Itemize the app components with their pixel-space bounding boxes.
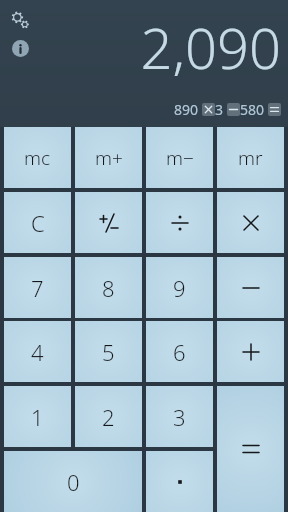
staticText: 6 xyxy=(173,337,186,367)
button[interactable]: 6 xyxy=(146,321,213,382)
button[interactable]: Info xyxy=(6,34,34,62)
button[interactable]: Settings xyxy=(6,6,34,34)
button[interactable]: 8 xyxy=(75,257,142,318)
button[interactable]: 0 xyxy=(4,451,142,512)
button[interactable]: 3 xyxy=(146,386,213,447)
staticText: 890 xyxy=(174,100,199,119)
button[interactable]: Equals xyxy=(217,386,284,512)
staticText: 580 xyxy=(240,100,265,119)
button[interactable]: mr xyxy=(217,127,284,188)
button[interactable]: m+ xyxy=(75,127,142,188)
staticText: mr xyxy=(238,145,263,171)
button[interactable]: mc xyxy=(4,127,71,188)
button[interactable]: 2 xyxy=(75,386,142,447)
button[interactable]: Minus xyxy=(217,257,284,318)
button[interactable]: Plus xyxy=(217,321,284,382)
button[interactable]: 7 xyxy=(4,257,71,318)
staticText: 0 xyxy=(67,467,80,497)
button[interactable]: Multiply xyxy=(217,192,284,253)
button[interactable]: 5 xyxy=(75,321,142,382)
button[interactable]: Plus minus xyxy=(75,192,142,253)
staticText: 3 xyxy=(215,100,224,119)
button[interactable]: m− xyxy=(146,127,213,188)
staticText: 5 xyxy=(102,337,115,367)
staticText: m+ xyxy=(95,145,123,171)
staticText: mc xyxy=(24,145,51,171)
staticText: 8 xyxy=(102,273,115,303)
staticText: 1 xyxy=(31,402,44,432)
button[interactable]: Divide xyxy=(146,192,213,253)
staticText: 7 xyxy=(31,273,44,303)
staticText: m− xyxy=(166,145,194,171)
button[interactable]: 9 xyxy=(146,257,213,318)
staticText: 9 xyxy=(173,273,186,303)
staticText: 2 xyxy=(102,402,115,432)
staticText: 2,090 xyxy=(140,9,281,85)
button[interactable]: C xyxy=(4,192,71,253)
button[interactable]: 1 xyxy=(4,386,71,447)
staticText: 4 xyxy=(31,337,44,367)
button[interactable]: 4 xyxy=(4,321,71,382)
staticText: 3 xyxy=(173,402,186,432)
staticText: C xyxy=(31,208,45,238)
button[interactable]: Decimal point xyxy=(146,451,213,512)
